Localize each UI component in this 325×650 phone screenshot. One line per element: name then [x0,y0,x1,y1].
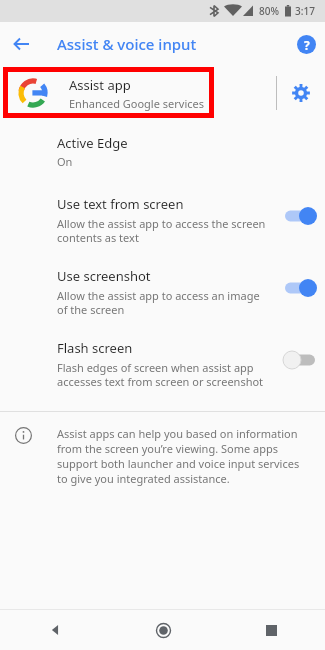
staticText: Assist app [69,76,131,94]
button[interactable]: Back [6,22,38,66]
button[interactable]: Flash screen [0,325,325,397]
staticText: Use screenshot [57,267,151,285]
staticText: Active Edge [57,134,128,152]
button[interactable]: Use screenshot [0,253,325,325]
staticText: 3:17 [295,4,315,18]
staticText: 80% [259,4,279,18]
button[interactable]: Assist app [0,66,325,120]
button[interactable]: Recent apps [217,610,325,650]
staticText: On [57,154,73,169]
button[interactable]: Assist app settings [277,66,325,120]
staticText: Assist apps can help you based on inform… [57,426,308,486]
staticText: ? [304,37,310,53]
staticText: Allow the assist app to access an image … [57,288,260,317]
button[interactable]: Active Edge [0,120,325,179]
other: Use screenshot on [279,267,325,301]
staticText: Use text from screen [57,195,184,213]
other: Flash screen off [279,339,325,373]
staticText: Assist & voice input [57,34,197,54]
staticText: Flash screen [57,339,133,357]
staticText: Allow the assist app to access the scree… [57,216,266,245]
button[interactable]: Use text from screen [0,179,325,253]
button[interactable]: Help [291,22,321,66]
staticText: Enhanced Google services [69,96,204,111]
staticText: Flash edges of screen when assist app ac… [57,360,264,389]
button[interactable]: Back [0,610,109,650]
other: Use text from screen on [279,195,325,229]
button[interactable]: Home [109,610,217,650]
